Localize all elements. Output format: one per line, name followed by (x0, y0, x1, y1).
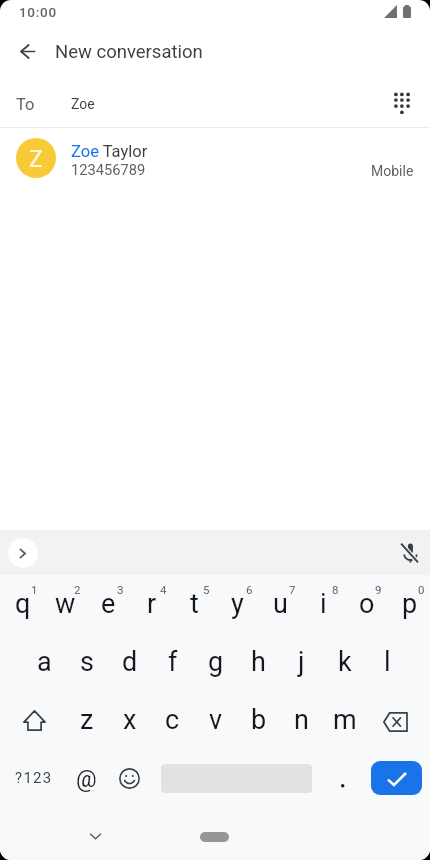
staticText: 8 (332, 583, 339, 596)
button[interactable]: h (236, 633, 279, 691)
button[interactable]: Hide keyboard (77, 818, 113, 854)
staticText: n (294, 704, 309, 736)
staticText: 9 (375, 583, 382, 596)
button[interactable]: i (301, 575, 344, 633)
button[interactable]: Dialpad (382, 83, 422, 123)
button[interactable]: q (0, 575, 43, 633)
staticText: 6 (246, 583, 253, 596)
staticText: j (298, 646, 305, 678)
button[interactable]: c (150, 691, 193, 749)
button[interactable]: a (22, 633, 64, 691)
staticText: a (37, 646, 52, 678)
button[interactable]: Space (151, 749, 321, 807)
staticText: Mobile (371, 163, 414, 179)
button[interactable]: Back (8, 32, 48, 72)
button[interactable]: x (107, 691, 150, 749)
button[interactable]: y (215, 575, 258, 633)
staticText: o (359, 588, 375, 620)
button[interactable]: Z (0, 128, 430, 190)
staticText: p (402, 588, 418, 620)
staticText: 4 (160, 583, 167, 596)
button[interactable]: s (64, 633, 107, 691)
button[interactable]: g (193, 633, 236, 691)
staticText: @ (76, 766, 97, 793)
staticText: f (168, 646, 178, 678)
button[interactable]: r (129, 575, 172, 633)
staticText: New conversation (55, 41, 203, 63)
button[interactable]: @ (64, 749, 109, 807)
staticText: c (165, 704, 180, 736)
button[interactable]: w (43, 575, 86, 633)
button[interactable]: z (64, 691, 107, 749)
staticText: g (208, 646, 224, 678)
button[interactable]: p (387, 575, 430, 633)
button[interactable]: Shift (0, 691, 64, 749)
staticText: Zoe (71, 96, 95, 112)
staticText: r (147, 588, 157, 620)
button[interactable]: d (107, 633, 150, 691)
button[interactable]: u (258, 575, 301, 633)
staticText: s (80, 646, 94, 678)
button[interactable]: m (322, 691, 365, 749)
staticText: d (122, 646, 138, 678)
staticText: 123456789 (71, 161, 146, 178)
staticText: Zoe Taylor (71, 142, 148, 161)
button[interactable]: Voice input off (392, 535, 427, 570)
button[interactable]: b (236, 691, 279, 749)
button[interactable]: Send (363, 749, 430, 807)
button[interactable]: j (279, 633, 322, 691)
staticText: 0 (418, 583, 425, 596)
button[interactable]: e (86, 575, 129, 633)
staticText: w (55, 588, 76, 620)
button[interactable]: t (172, 575, 215, 633)
button[interactable]: f (150, 633, 193, 691)
button[interactable]: o (344, 575, 387, 633)
staticText: q (15, 588, 31, 620)
staticText: ?123 (15, 769, 53, 787)
staticText: e (101, 588, 116, 620)
button[interactable]: ?123 (0, 749, 64, 807)
button[interactable]: Expand suggestions (8, 538, 38, 568)
staticText: z (80, 704, 94, 736)
staticText: y (231, 588, 244, 620)
staticText: m (333, 704, 357, 736)
staticText: h (251, 646, 266, 678)
button[interactable]: Period (321, 749, 363, 807)
button[interactable]: v (193, 691, 236, 749)
staticText: b (251, 704, 267, 736)
staticText: 7 (289, 583, 296, 596)
staticText: 5 (203, 583, 210, 596)
staticText: v (209, 704, 223, 736)
staticText: Z (29, 146, 43, 173)
button[interactable]: n (279, 691, 322, 749)
staticText: u (273, 588, 288, 620)
button[interactable]: k (322, 633, 365, 691)
button[interactable]: l (365, 633, 408, 691)
button[interactable]: Backspace (365, 691, 430, 749)
staticText: t (190, 588, 199, 620)
staticText: To (16, 95, 35, 114)
staticText: i (320, 588, 327, 620)
staticText: l (384, 646, 391, 678)
staticText: 2 (74, 583, 81, 596)
staticText: x (123, 704, 137, 736)
staticText: 10:00 (19, 4, 57, 20)
staticText: k (338, 646, 352, 678)
button[interactable]: Emoji (109, 749, 151, 807)
staticText: 1 (31, 583, 38, 596)
staticText: 3 (117, 583, 124, 596)
